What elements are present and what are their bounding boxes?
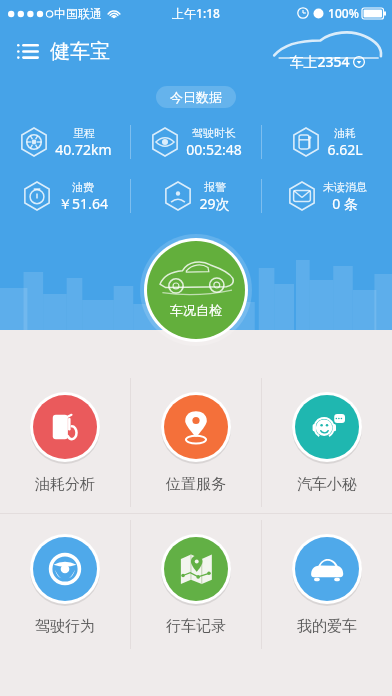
button[interactable]: 油耗分析 bbox=[0, 372, 130, 513]
button[interactable]: 驾驶行为 bbox=[0, 514, 130, 655]
staticText: 6.62L bbox=[327, 140, 363, 159]
staticText: 车况自检 bbox=[170, 302, 222, 318]
staticText: 健车宝 bbox=[50, 39, 110, 64]
staticText: 未读消息 bbox=[323, 180, 367, 194]
button[interactable]: 我的爱车 bbox=[262, 514, 392, 655]
staticText: 油耗 bbox=[334, 126, 356, 140]
staticText: 行车记录 bbox=[166, 617, 226, 636]
staticText: ￥51.64 bbox=[58, 194, 108, 213]
button[interactable]: Menu bbox=[8, 31, 48, 71]
staticText: 今日数据 bbox=[170, 89, 222, 105]
staticText: 上午1:18 bbox=[172, 5, 220, 21]
staticText: 我的爱车 bbox=[297, 617, 357, 636]
staticText: 29次 bbox=[199, 194, 230, 213]
button[interactable]: 油费 bbox=[0, 172, 130, 220]
staticText: 40.72km bbox=[55, 140, 112, 159]
button[interactable]: 报警 bbox=[131, 172, 261, 220]
staticText: 0 条 bbox=[332, 194, 358, 213]
staticText: 位置服务 bbox=[166, 475, 226, 494]
button[interactable]: 汽车小秘 bbox=[262, 372, 392, 513]
button[interactable]: 里程 bbox=[0, 118, 130, 166]
staticText: 油费 bbox=[72, 180, 94, 194]
staticText: 驾驶时长 bbox=[192, 126, 236, 140]
staticText: 报警 bbox=[204, 180, 226, 194]
staticText: 里程 bbox=[73, 126, 95, 140]
staticText: 驾驶行为 bbox=[35, 617, 95, 636]
button[interactable]: 车况自检 Vehicle self check bbox=[140, 234, 252, 346]
button[interactable]: 今日数据 bbox=[170, 89, 222, 105]
staticText: 100% bbox=[328, 5, 359, 21]
button[interactable]: 驾驶时长 bbox=[131, 118, 261, 166]
button[interactable]: 位置服务 bbox=[131, 372, 261, 513]
staticText: 车上2354 bbox=[289, 52, 350, 71]
staticText: 油耗分析 bbox=[35, 475, 95, 494]
button[interactable]: 未读消息 bbox=[262, 172, 392, 220]
button[interactable]: 车上2354 bbox=[272, 29, 382, 73]
staticText: 汽车小秘 bbox=[297, 475, 357, 494]
button[interactable]: 行车记录 bbox=[131, 514, 261, 655]
staticText: 中国联通 bbox=[54, 6, 102, 21]
staticText: 00:52:48 bbox=[186, 140, 242, 159]
button[interactable]: 油耗 bbox=[262, 118, 392, 166]
